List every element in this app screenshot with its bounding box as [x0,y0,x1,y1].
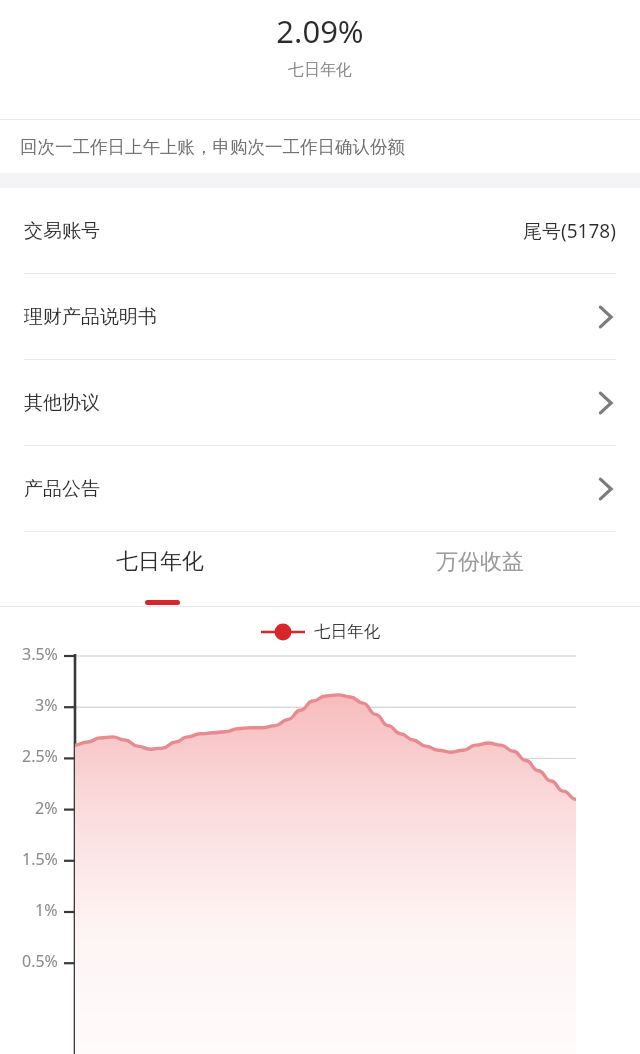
staticText: 2.09% [276,10,364,52]
staticText: 1% [35,899,58,921]
button[interactable]: 交易账号 [0,188,640,273]
staticText: 1.5% [22,848,58,870]
staticText: 产品公告 [24,477,100,501]
staticText: 3% [35,694,58,716]
staticText: 3.5% [22,643,58,665]
button[interactable]: 其他协议 [0,360,640,445]
staticText: 回次一工作日上午上账，申购次一工作日确认份额 [20,136,405,158]
button[interactable]: 万份收益 [320,532,640,607]
staticText: 尾号(5178) [523,218,616,244]
button[interactable]: 理财产品说明书 [0,274,640,359]
staticText: 0.5% [22,950,58,972]
staticText: 万份收益 [436,548,524,576]
other: 打开 其他协议 [598,390,614,416]
staticText: 2.5% [22,745,58,767]
button[interactable]: 产品公告 [0,446,640,531]
staticText: 2% [35,797,58,819]
other: 打开 理财产品说明书 [598,304,614,330]
staticText: 七日年化 [314,621,380,642]
other: 打开 产品公告 [598,476,614,502]
staticText: 七日年化 [288,60,352,80]
button[interactable]: 七日年化 [0,532,320,607]
staticText: 理财产品说明书 [24,305,157,329]
staticText: 七日年化 [116,548,204,576]
staticText: 其他协议 [24,391,100,415]
staticText: 交易账号 [24,219,100,243]
